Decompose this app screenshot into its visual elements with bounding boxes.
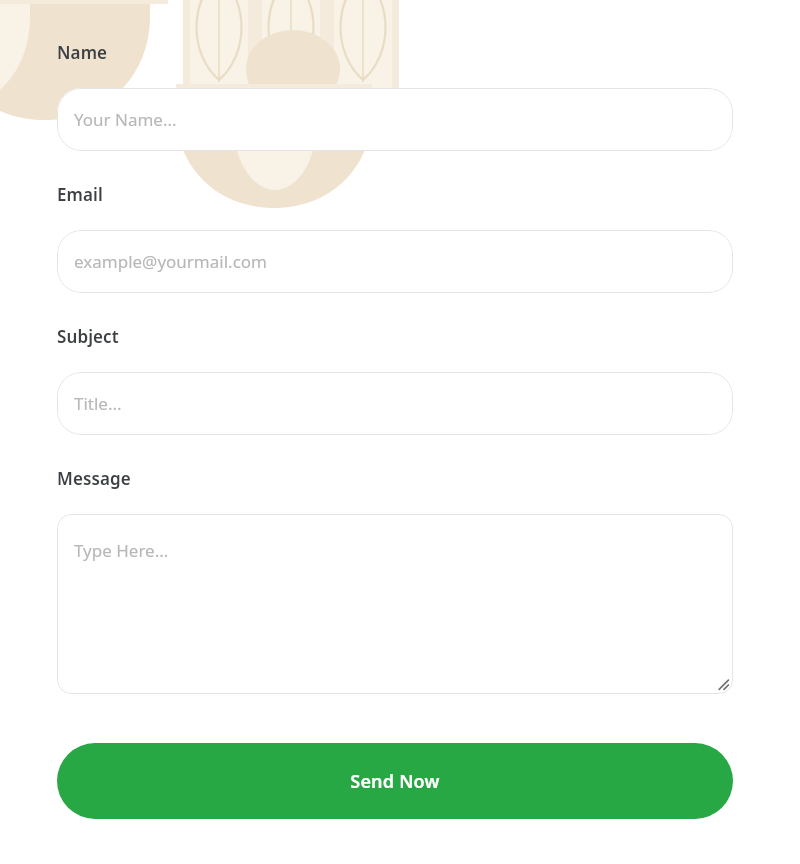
button[interactable]: Type Here... xyxy=(57,514,733,694)
staticText: Name xyxy=(57,41,108,64)
staticText: Email xyxy=(57,183,103,206)
staticText: Send Now xyxy=(350,769,440,794)
staticText: Type Here... xyxy=(74,539,169,562)
staticText: Your Name... xyxy=(74,108,177,131)
staticText: example@yourmail.com xyxy=(74,250,267,273)
button[interactable]: Title... xyxy=(57,372,733,435)
staticText: Subject xyxy=(57,325,119,348)
button[interactable]: Your Name... xyxy=(57,88,733,151)
button[interactable]: Send Now xyxy=(57,743,733,819)
staticText: Message xyxy=(57,467,131,490)
staticText: Title... xyxy=(74,392,122,415)
button[interactable]: example@yourmail.com xyxy=(57,230,733,293)
